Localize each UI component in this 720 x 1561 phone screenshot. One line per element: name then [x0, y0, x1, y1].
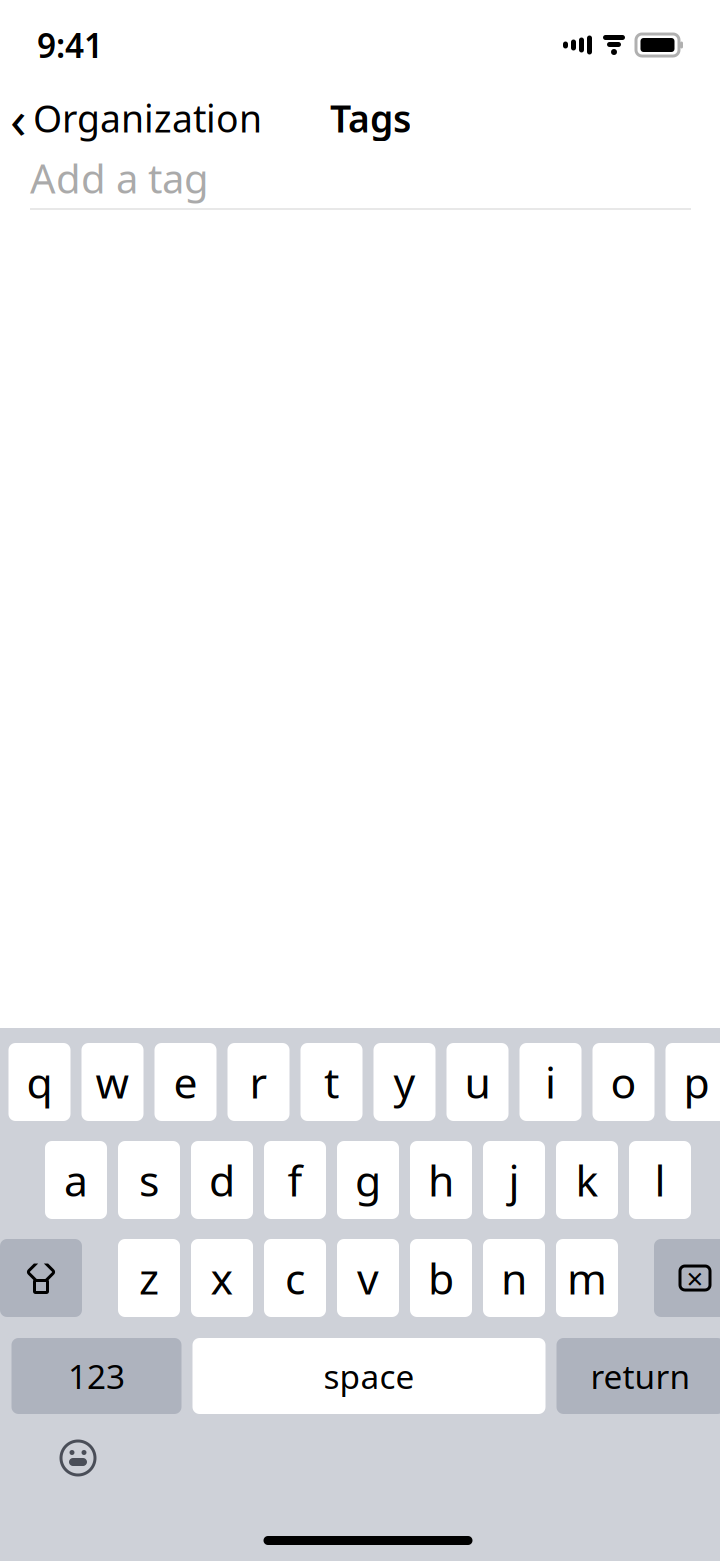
- staticText: y: [393, 1054, 415, 1110]
- staticText: g: [355, 1152, 381, 1208]
- button[interactable]: i: [519, 1043, 581, 1121]
- staticText: z: [139, 1250, 159, 1306]
- staticText: m: [567, 1250, 607, 1306]
- staticText: ×: [686, 1258, 703, 1297]
- button[interactable]: l: [629, 1141, 691, 1219]
- staticText: c: [285, 1250, 305, 1306]
- staticText: x: [210, 1250, 233, 1306]
- staticText: a: [64, 1152, 88, 1208]
- staticText: b: [428, 1250, 454, 1306]
- button[interactable]: Emoji: [8, 1414, 96, 1476]
- button[interactable]: space: [192, 1338, 545, 1414]
- button[interactable]: u: [446, 1043, 508, 1121]
- button[interactable]: a: [45, 1141, 107, 1219]
- button[interactable]: p: [665, 1043, 720, 1121]
- button[interactable]: g: [337, 1141, 399, 1219]
- staticText: space: [323, 1354, 414, 1398]
- staticText: k: [575, 1152, 598, 1208]
- staticText: s: [139, 1152, 159, 1208]
- button[interactable]: q: [8, 1043, 70, 1121]
- button[interactable]: ‹: [10, 77, 262, 159]
- staticText: d: [209, 1152, 235, 1208]
- staticText: f: [287, 1152, 302, 1208]
- staticText: e: [173, 1054, 197, 1110]
- button[interactable]: h: [410, 1141, 472, 1219]
- button[interactable]: j: [483, 1141, 545, 1219]
- button[interactable]: f: [264, 1141, 326, 1219]
- staticText: q: [26, 1054, 52, 1110]
- staticText: u: [464, 1054, 490, 1110]
- staticText: j: [508, 1152, 519, 1208]
- button[interactable]: m: [556, 1239, 618, 1317]
- staticText: t: [324, 1054, 339, 1110]
- staticText: h: [428, 1152, 454, 1208]
- button[interactable]: n: [483, 1239, 545, 1317]
- button[interactable]: e: [154, 1043, 216, 1121]
- button[interactable]: d: [191, 1141, 253, 1219]
- staticText: l: [654, 1152, 665, 1208]
- staticText: n: [501, 1250, 527, 1306]
- button[interactable]: z: [118, 1239, 180, 1317]
- staticText: 123: [68, 1354, 125, 1398]
- button[interactable]: b: [410, 1239, 472, 1317]
- staticText: p: [683, 1054, 709, 1110]
- button[interactable]: y: [373, 1043, 435, 1121]
- button[interactable]: Shift: [0, 1239, 82, 1317]
- button[interactable]: k: [556, 1141, 618, 1219]
- staticText: return: [590, 1354, 690, 1398]
- staticText: i: [545, 1054, 556, 1110]
- staticText: r: [249, 1054, 267, 1110]
- button[interactable]: v: [337, 1239, 399, 1317]
- staticText: Organization: [33, 93, 262, 143]
- button[interactable]: o: [592, 1043, 654, 1121]
- staticText: Add a tag: [30, 151, 209, 204]
- button[interactable]: Delete: [654, 1239, 720, 1317]
- staticText: ‹: [10, 83, 27, 153]
- button[interactable]: s: [118, 1141, 180, 1219]
- staticText: v: [357, 1250, 379, 1306]
- button[interactable]: t: [300, 1043, 362, 1121]
- staticText: w: [95, 1054, 129, 1110]
- button[interactable]: c: [264, 1239, 326, 1317]
- button[interactable]: return: [556, 1338, 720, 1414]
- button[interactable]: x: [191, 1239, 253, 1317]
- staticText: o: [610, 1054, 636, 1110]
- staticText: 9:41: [37, 23, 103, 67]
- button[interactable]: w: [81, 1043, 143, 1121]
- button[interactable]: 123: [11, 1338, 181, 1414]
- button[interactable]: r: [227, 1043, 289, 1121]
- staticText: Tags: [330, 93, 411, 143]
